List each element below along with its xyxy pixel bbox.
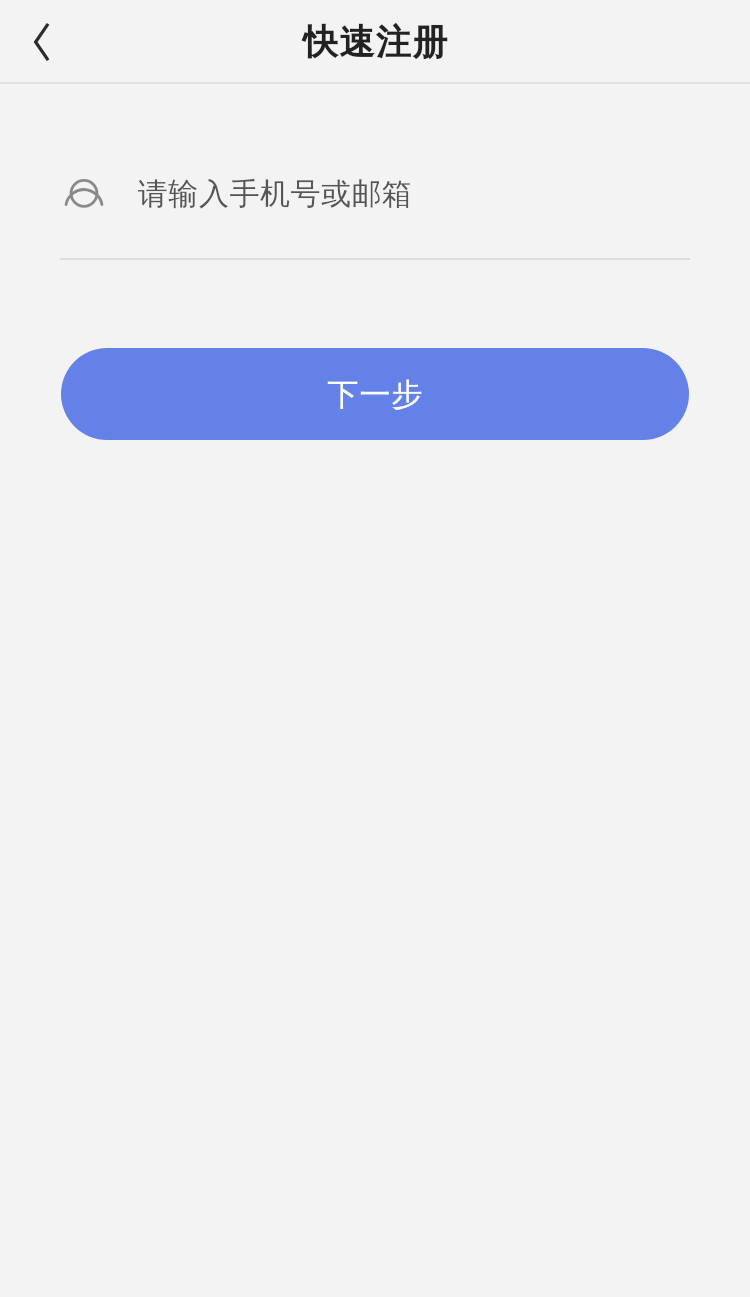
staticText: 快速注册	[302, 20, 448, 64]
button[interactable]: Back	[4, 10, 68, 74]
staticText: 请输入手机号或邮箱	[138, 175, 413, 213]
button[interactable]: 请输入手机号或邮箱	[60, 173, 690, 260]
staticText: 下一步	[327, 375, 423, 414]
button[interactable]: 下一步	[61, 348, 689, 440]
